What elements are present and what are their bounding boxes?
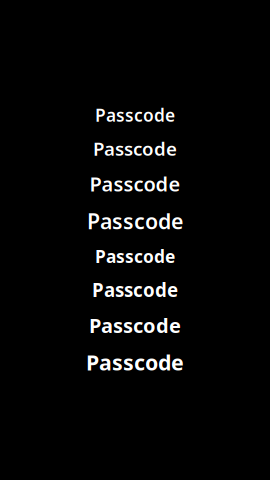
staticText: Passcode — [95, 244, 175, 268]
staticText: Passcode — [95, 103, 175, 127]
staticText: Passcode — [93, 136, 177, 161]
staticText: Passcode — [89, 170, 180, 197]
staticText: Passcode — [92, 277, 178, 302]
staticText: Passcode — [86, 348, 184, 377]
staticText: Passcode — [89, 311, 181, 339]
staticText: Passcode — [87, 206, 183, 235]
